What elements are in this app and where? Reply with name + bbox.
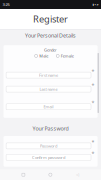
staticText: 3:26 [2,2,9,7]
button[interactable]: Home [47,171,54,178]
button[interactable]: Recent apps [20,171,27,178]
button[interactable]: Password [6,143,91,149]
staticText: Female [61,53,74,58]
button[interactable]: Confirm password [6,154,91,160]
button[interactable]: First name [6,72,91,78]
staticText: Confirm password [32,155,65,160]
staticText: Email [44,104,54,109]
staticText: Your Personal Details [25,32,76,39]
button[interactable]: Back [74,171,81,178]
staticText: * [91,99,94,106]
staticText: * [91,150,94,157]
button[interactable]: Email [6,104,91,110]
staticText: Gender [44,47,57,52]
staticText: Password [40,143,57,148]
staticText: First name [39,72,58,78]
button[interactable]: Female [56,53,74,58]
staticText: ◁ [76,172,79,177]
staticText: * [91,138,94,145]
button[interactable]: Male [35,53,48,58]
staticText: Register [33,13,68,25]
button[interactable]: Last name [6,86,91,92]
staticText: Your Password [32,125,68,132]
staticText: Last name [40,86,58,92]
staticText: * [91,82,94,89]
staticText: Male [39,53,48,58]
staticText: ▮ ▾ ▰ [92,3,98,6]
staticText: * [91,68,94,75]
